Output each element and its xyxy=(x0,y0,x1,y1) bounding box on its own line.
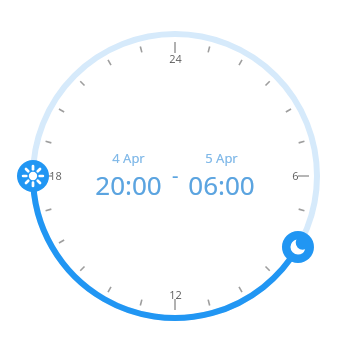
staticText: 12 xyxy=(169,287,182,302)
staticText: 6 xyxy=(292,168,299,183)
staticText: 24 xyxy=(169,51,182,66)
staticText: 20:00 xyxy=(95,167,162,202)
staticText: 4 Apr xyxy=(112,149,145,167)
button[interactable]: Sleep schedule 20:00 to 06:00 xyxy=(0,0,350,350)
staticText: - xyxy=(172,162,179,189)
staticText: 06:00 xyxy=(188,167,255,202)
staticText: 5 Apr xyxy=(205,149,238,167)
staticText: 18 xyxy=(49,168,62,183)
